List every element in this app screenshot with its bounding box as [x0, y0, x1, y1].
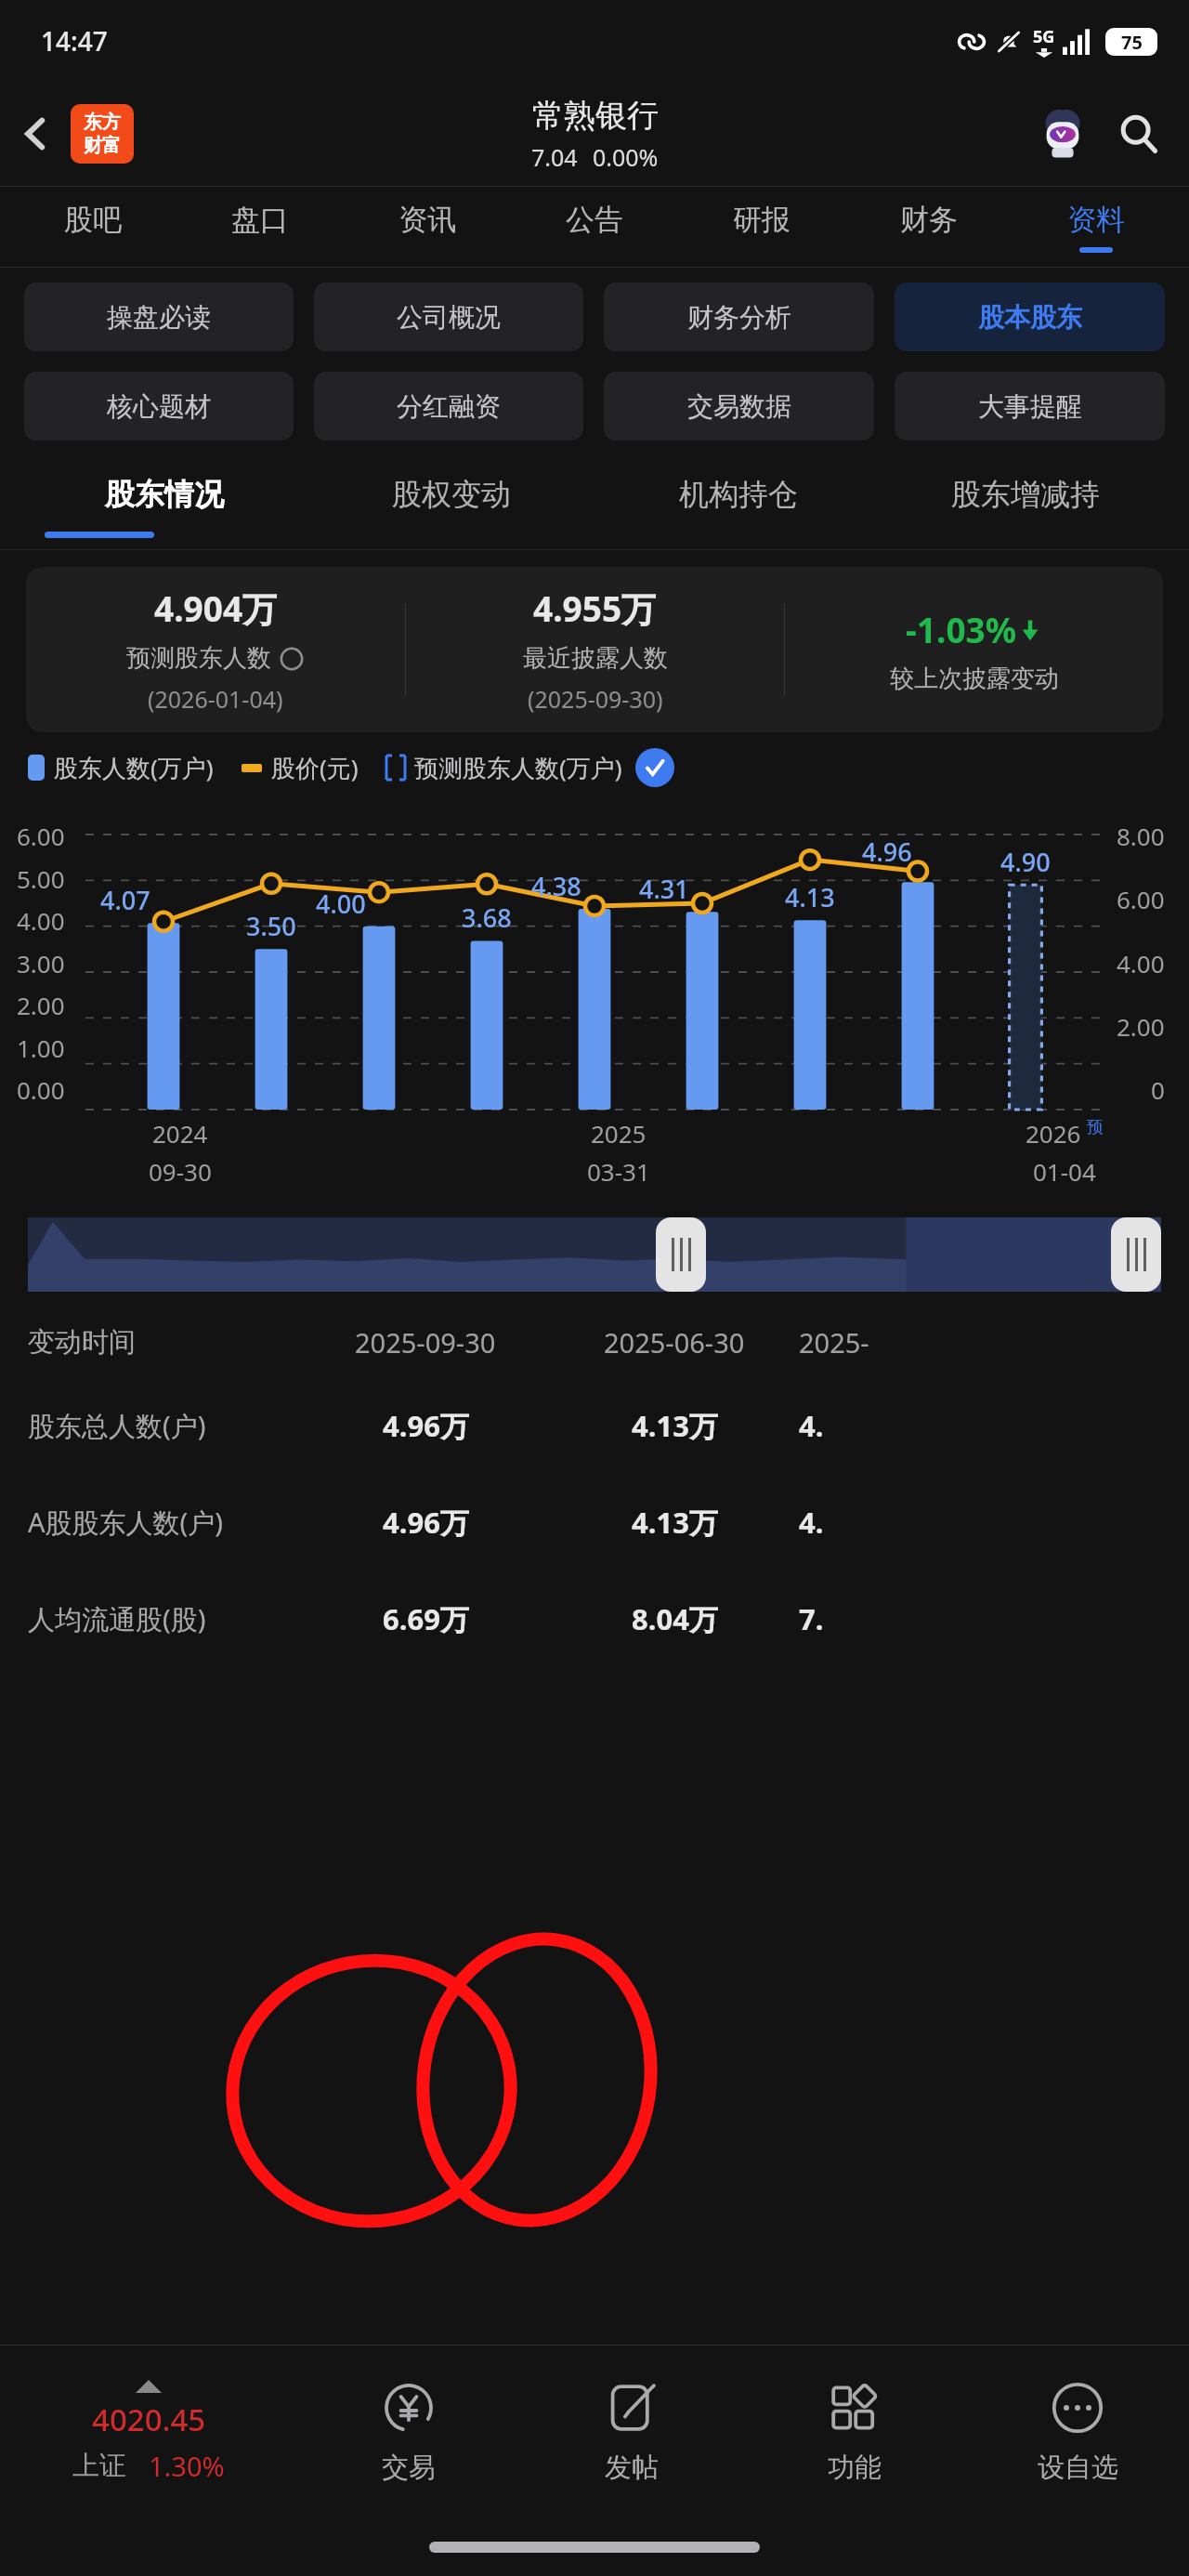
staticText: 股吧 — [64, 202, 122, 238]
staticText: 发帖 — [605, 2451, 659, 2485]
staticText: 股权变动 — [392, 476, 511, 513]
staticText: 2025-09-30 — [355, 1324, 496, 1360]
button[interactable]: 盘口 — [176, 187, 344, 267]
button[interactable]: 资料 — [1013, 187, 1180, 267]
staticText: 财务分析 — [687, 301, 791, 334]
button[interactable]: 股本股东 — [895, 283, 1165, 351]
staticText: 资料 — [1067, 202, 1125, 238]
staticText: 分红融资 — [397, 390, 501, 423]
staticText: 4.955万 — [533, 585, 657, 632]
staticText: 4.13万 — [632, 1503, 718, 1542]
button[interactable]: Trade — [297, 2346, 520, 2518]
staticText: 较上次披露变动 — [890, 664, 1059, 694]
staticText: 股东增减持 — [951, 476, 1100, 513]
button[interactable]: 股东增减持 — [882, 457, 1169, 532]
button[interactable]: Toggle forecast series — [635, 748, 674, 787]
staticText: 核心题材 — [107, 390, 211, 423]
button[interactable]: 股权变动 — [307, 457, 594, 532]
staticText: 8.00 — [1117, 820, 1165, 852]
staticText: 75 — [1121, 30, 1143, 55]
staticText: 预测股东人数(万户) — [414, 751, 622, 784]
button[interactable]: 操盘必读 — [24, 283, 294, 351]
staticText: 2025- — [799, 1324, 869, 1360]
staticText: 1.30% — [149, 2448, 225, 2484]
staticText: A股股东人数(户) — [28, 1504, 301, 1541]
staticText: 最近披露人数 — [523, 643, 668, 674]
button[interactable]: 交易数据 — [604, 372, 874, 440]
staticText: 14:47 — [41, 23, 108, 59]
button[interactable]: Functions — [743, 2346, 966, 2518]
button[interactable]: 财务分析 — [604, 283, 874, 351]
staticText: 2024 — [152, 1117, 208, 1150]
button[interactable]: Back — [7, 106, 63, 162]
staticText: 4.00 — [17, 904, 65, 937]
button[interactable]: 大事提醒 — [895, 372, 1165, 440]
staticText: 机构持仓 — [679, 476, 798, 513]
staticText: 03-31 — [587, 1155, 650, 1188]
button[interactable]: Post — [520, 2346, 743, 2518]
button[interactable]: 4020.45 — [0, 2380, 297, 2484]
staticText: 设自选 — [1038, 2451, 1118, 2485]
button[interactable]: East Money logo — [71, 104, 134, 164]
button[interactable]: Search — [1111, 106, 1167, 162]
button[interactable]: Range start handle — [656, 1217, 706, 1292]
staticText: 交易数据 — [687, 390, 791, 423]
staticText: 功能 — [828, 2451, 882, 2485]
button[interactable]: 研报 — [678, 187, 845, 267]
button[interactable]: Add to watchlist — [966, 2346, 1189, 2518]
button[interactable]: 股东情况 — [20, 457, 307, 532]
staticText: (2026-01-04) — [148, 683, 283, 715]
staticText: 09-30 — [149, 1155, 212, 1188]
staticText: 4.96万 — [383, 1406, 469, 1445]
staticText: 2.00 — [1117, 1010, 1165, 1043]
staticText: 01-04 — [1033, 1155, 1096, 1188]
button[interactable]: AI assistant — [1033, 104, 1092, 164]
staticText: 0.00% — [593, 141, 659, 173]
staticText: 股东人数(万户) — [54, 751, 214, 784]
button[interactable]: 分红融资 — [314, 372, 583, 440]
staticText: 5G — [1033, 25, 1055, 48]
staticText: 预测股东人数 — [126, 643, 271, 674]
staticText: 公告 — [566, 202, 623, 238]
staticText: 预 — [1087, 1117, 1104, 1138]
button[interactable]: Range end handle — [1111, 1217, 1161, 1292]
staticText: 2026 — [1026, 1117, 1081, 1150]
staticText: 8.04万 — [632, 1599, 718, 1638]
button[interactable]: 财务 — [845, 187, 1013, 267]
staticText: 4.904万 — [154, 585, 278, 632]
staticText: 6.00 — [17, 820, 65, 852]
button[interactable]: 公司概况 — [314, 283, 583, 351]
staticText: 3.00 — [17, 947, 65, 979]
staticText: 股东情况 — [105, 476, 224, 513]
staticText: 东方 — [84, 111, 121, 134]
staticText: 6.00 — [1117, 883, 1165, 915]
staticText: -1.03% — [906, 606, 1017, 652]
staticText: 交易 — [382, 2451, 436, 2485]
button[interactable]: 核心题材 — [24, 372, 294, 440]
staticText: 4.00 — [1117, 947, 1165, 979]
staticText: 研报 — [733, 202, 790, 238]
button[interactable]: 机构持仓 — [594, 457, 882, 532]
staticText: 4.13万 — [632, 1406, 718, 1445]
staticText: 7. — [799, 1599, 824, 1638]
button[interactable]: 公告 — [511, 187, 678, 267]
staticText: 2025-06-30 — [604, 1324, 745, 1360]
staticText: 股东总人数(户) — [28, 1407, 301, 1444]
staticText: 2025 — [591, 1117, 647, 1150]
staticText: 财富 — [84, 134, 121, 157]
button[interactable]: 股吧 — [9, 187, 176, 267]
staticText: 5.00 — [17, 862, 65, 895]
staticText: 资讯 — [399, 202, 456, 238]
button[interactable]: 资讯 — [344, 187, 511, 267]
staticText: 0 — [1151, 1073, 1165, 1106]
staticText: 股价(元) — [271, 751, 359, 784]
staticText: 操盘必读 — [107, 301, 211, 334]
staticText: 人均流通股(股) — [28, 1600, 301, 1637]
staticText: 6.69万 — [383, 1599, 469, 1638]
staticText: (2025-09-30) — [528, 683, 663, 715]
staticText: 股本股东 — [978, 301, 1082, 334]
staticText: 0.00 — [17, 1073, 65, 1106]
staticText: 4020.45 — [92, 2399, 206, 2440]
staticText: 4. — [799, 1503, 824, 1542]
staticText: 公司概况 — [397, 301, 501, 334]
